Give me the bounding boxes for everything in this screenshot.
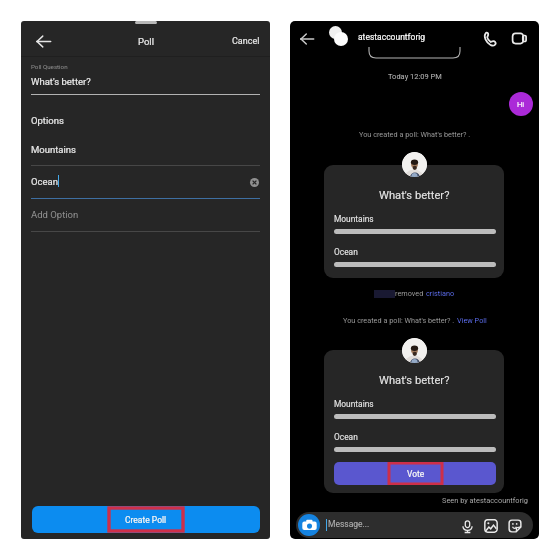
- button[interactable]: Stickers: [507, 518, 523, 534]
- button[interactable]: Video call: [509, 28, 530, 49]
- button[interactable]: Create Poll: [32, 506, 260, 533]
- staticText: Today 12:09 PM: [388, 72, 442, 81]
- staticText: What's better?: [379, 189, 450, 202]
- staticText: Poll Question: [31, 63, 68, 70]
- staticText: Ocean: [334, 247, 358, 257]
- staticText: Ocean: [334, 432, 358, 442]
- staticText: What's better?: [379, 374, 450, 387]
- staticText: Message...: [328, 519, 370, 529]
- staticText: Hi: [517, 100, 525, 109]
- staticText: You created a poll: What's better? .: [343, 316, 457, 325]
- staticText: Add Option: [31, 209, 79, 220]
- staticText: Seen by atestaccountforig: [442, 496, 528, 505]
- staticText: Poll: [138, 36, 154, 47]
- button[interactable]: What's better?: [324, 165, 504, 278]
- staticText: Mountains: [334, 214, 374, 224]
- staticText: Create Poll: [125, 515, 167, 525]
- staticText: What's better?: [31, 76, 91, 87]
- staticText: Vote: [407, 469, 425, 479]
- button[interactable]: Camera: [298, 514, 320, 536]
- button[interactable]: Add Option: [31, 209, 79, 220]
- staticText: removed: [395, 289, 426, 298]
- staticText: Cancel: [232, 36, 260, 47]
- button[interactable]: Hi: [509, 92, 533, 116]
- button[interactable]: Cancel: [220, 34, 260, 48]
- staticText: atestaccountforig: [358, 32, 426, 42]
- staticText: View Poll: [457, 316, 487, 325]
- staticText: cristiano: [426, 289, 455, 298]
- staticText: You created a poll: What's better? .: [359, 130, 471, 139]
- button[interactable]: Back: [295, 27, 319, 51]
- button[interactable]: Vote: [334, 462, 496, 485]
- button[interactable]: View Poll: [457, 316, 487, 325]
- button[interactable]: atestaccountforig: [358, 32, 426, 42]
- staticText: Mountains: [334, 399, 374, 409]
- staticText: Options: [31, 115, 64, 126]
- button[interactable]: Voice call: [480, 29, 500, 49]
- button[interactable]: Clear option text: [247, 175, 261, 189]
- staticText: Mountains: [31, 144, 76, 155]
- button[interactable]: Gallery: [483, 518, 499, 534]
- staticText: Ocean: [31, 176, 58, 187]
- button[interactable]: What's better?: [324, 350, 504, 493]
- button[interactable]: Back: [31, 29, 55, 53]
- button[interactable]: Record voice message: [459, 518, 475, 534]
